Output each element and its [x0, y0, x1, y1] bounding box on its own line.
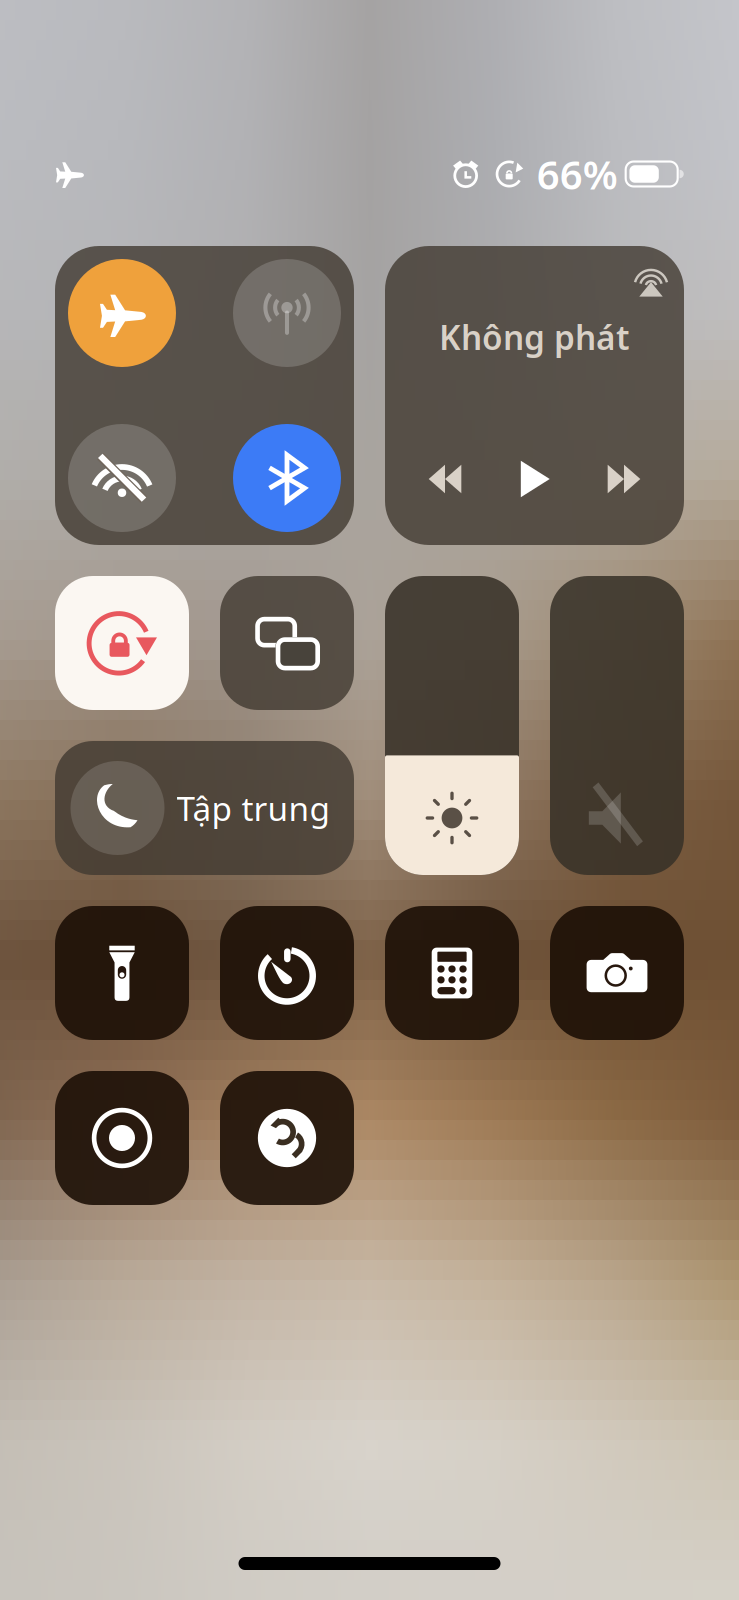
button[interactable]: Shazam	[220, 1071, 354, 1205]
button[interactable]: Wi-Fi	[55, 411, 189, 545]
button[interactable]: Rewind	[417, 451, 473, 507]
button[interactable]: Airplane Mode	[55, 246, 189, 380]
button[interactable]: Camera	[550, 906, 684, 1040]
button[interactable]: Fast Forward	[596, 451, 652, 507]
button[interactable]: Rotation Lock	[55, 576, 189, 710]
button[interactable]: Bluetooth	[220, 411, 354, 545]
button[interactable]: Play	[506, 451, 562, 507]
staticText: 66%	[537, 147, 618, 200]
button[interactable]: Screen Recording	[55, 1071, 189, 1205]
button[interactable]: Flashlight	[55, 906, 189, 1040]
button[interactable]: Cellular Data	[220, 246, 354, 380]
button[interactable]: Screen Mirroring	[220, 576, 354, 710]
button[interactable]: Calculator	[385, 906, 519, 1040]
staticText: Tập trung	[176, 786, 330, 830]
button[interactable]: Timer	[220, 906, 354, 1040]
button[interactable]: Tập trung	[55, 741, 354, 875]
button[interactable]: AirPlay	[629, 261, 673, 305]
staticText: Không phát	[439, 315, 630, 359]
